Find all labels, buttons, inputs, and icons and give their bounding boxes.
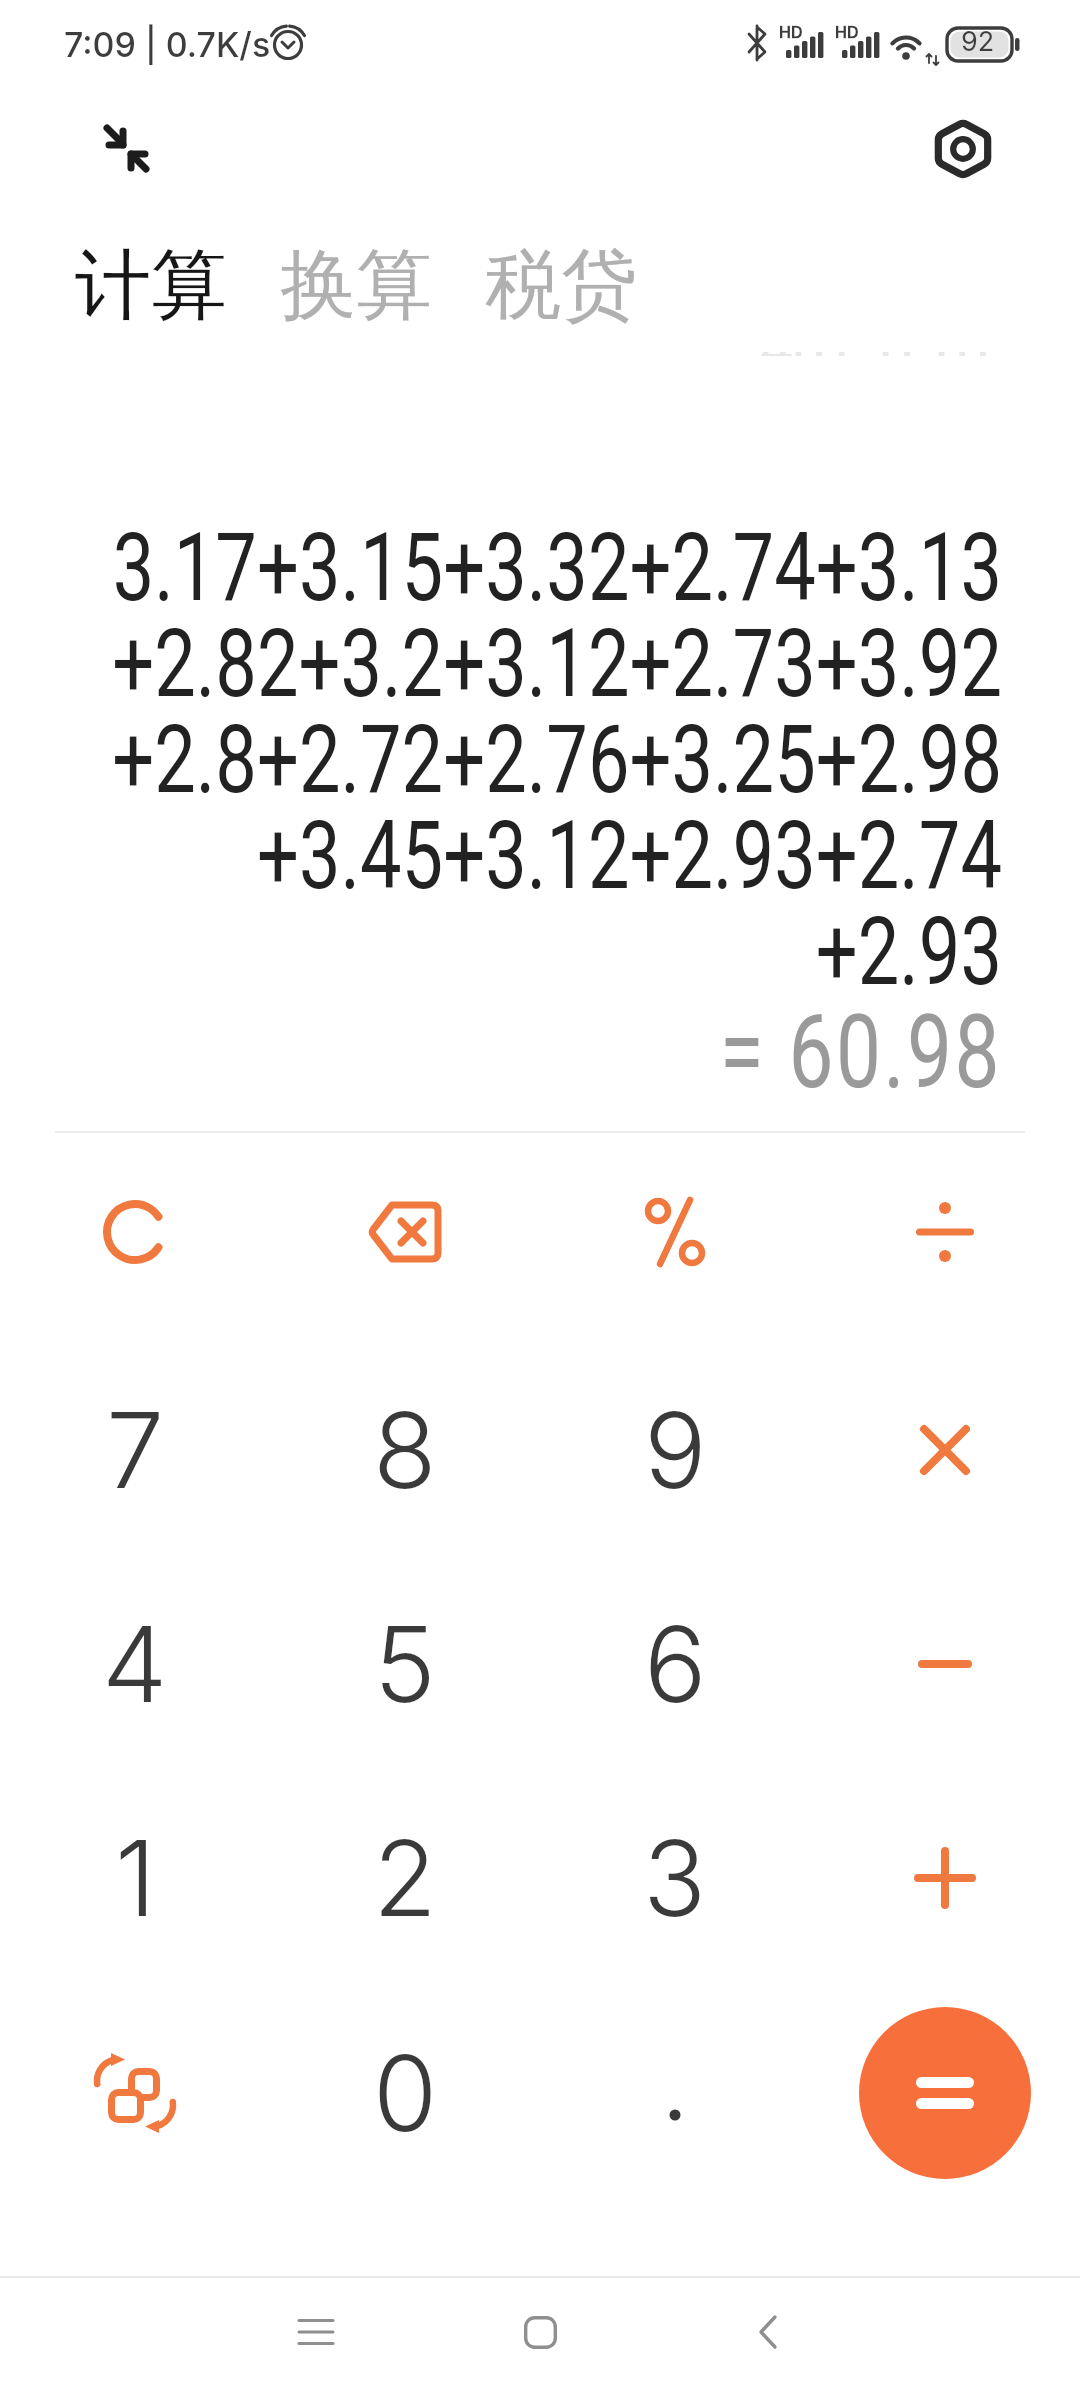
staticText: 92 xyxy=(961,25,995,58)
staticText: 计算 xyxy=(75,238,227,334)
staticText: 6 xyxy=(644,1601,707,1727)
staticText: 3 xyxy=(643,1815,707,1941)
staticText: 换算 xyxy=(280,238,432,334)
staticText: HD xyxy=(835,22,859,41)
button[interactable]: 税贷 xyxy=(485,238,637,334)
staticText: 5 xyxy=(374,1601,436,1727)
button[interactable] xyxy=(90,112,162,184)
button[interactable] xyxy=(277,2292,357,2372)
button[interactable]: 9 xyxy=(580,1355,770,1545)
staticText: 7:09 | 0.7K/s xyxy=(64,24,271,65)
staticText: 40+5+10 xyxy=(760,352,989,356)
button[interactable]: 1 xyxy=(40,1783,230,1973)
staticText: 4 xyxy=(102,1601,168,1727)
staticText: 1 xyxy=(115,1815,156,1941)
staticText: 8 xyxy=(373,1387,437,1513)
button[interactable]: 3 xyxy=(580,1783,770,1973)
button[interactable] xyxy=(580,1998,770,2188)
staticText: 2 xyxy=(373,1815,437,1941)
staticText: 0 xyxy=(373,2030,438,2156)
button[interactable]: 7 xyxy=(40,1355,230,1545)
button[interactable]: 2 xyxy=(310,1783,500,1973)
button[interactable] xyxy=(850,1137,1040,1327)
button[interactable] xyxy=(310,1137,500,1327)
button[interactable] xyxy=(728,2292,808,2372)
button[interactable] xyxy=(40,1998,230,2188)
button[interactable]: 6 xyxy=(580,1569,770,1759)
button[interactable] xyxy=(500,2292,580,2372)
staticText: 7 xyxy=(106,1387,165,1513)
button[interactable] xyxy=(580,1137,770,1327)
button[interactable] xyxy=(850,1783,1040,1973)
staticText: 9 xyxy=(644,1387,707,1513)
staticText: 税贷 xyxy=(485,238,637,334)
button[interactable]: 5 xyxy=(310,1569,500,1759)
staticText: = 60.98 xyxy=(719,992,1002,1112)
button[interactable] xyxy=(850,1569,1040,1759)
button[interactable]: 0 xyxy=(310,1998,500,2188)
button[interactable] xyxy=(40,1137,230,1327)
button[interactable]: 8 xyxy=(310,1355,500,1545)
button[interactable]: 计算 xyxy=(75,238,227,334)
button[interactable]: 换算 xyxy=(280,238,432,334)
button[interactable]: 4 xyxy=(40,1569,230,1759)
staticText: 3.17+3.15+3.32+2.74+3.13 +2.82+3.2+3.12+… xyxy=(112,512,1002,1007)
button[interactable] xyxy=(859,2007,1031,2179)
staticText: HD xyxy=(779,22,803,41)
button[interactable] xyxy=(850,1355,1040,1545)
button[interactable] xyxy=(928,114,998,184)
